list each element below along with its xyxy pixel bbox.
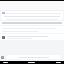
button[interactable]: Badge: [2, 12, 5, 14]
button[interactable]: [0, 21, 64, 25]
button[interactable]: [0, 26, 64, 33]
button[interactable]: Recents: [56, 62, 61, 63]
button[interactable]: Item icon: [0, 34, 64, 40]
button[interactable]: Back: [3, 62, 8, 63]
button[interactable]: Badge: [1, 11, 63, 20]
other: Item icon: [2, 36, 5, 39]
button[interactable]: Home: [28, 62, 35, 63]
button[interactable]: [6, 55, 61, 59]
button[interactable]: Attachment: [1, 56, 4, 59]
button[interactable]: [0, 1, 64, 11]
